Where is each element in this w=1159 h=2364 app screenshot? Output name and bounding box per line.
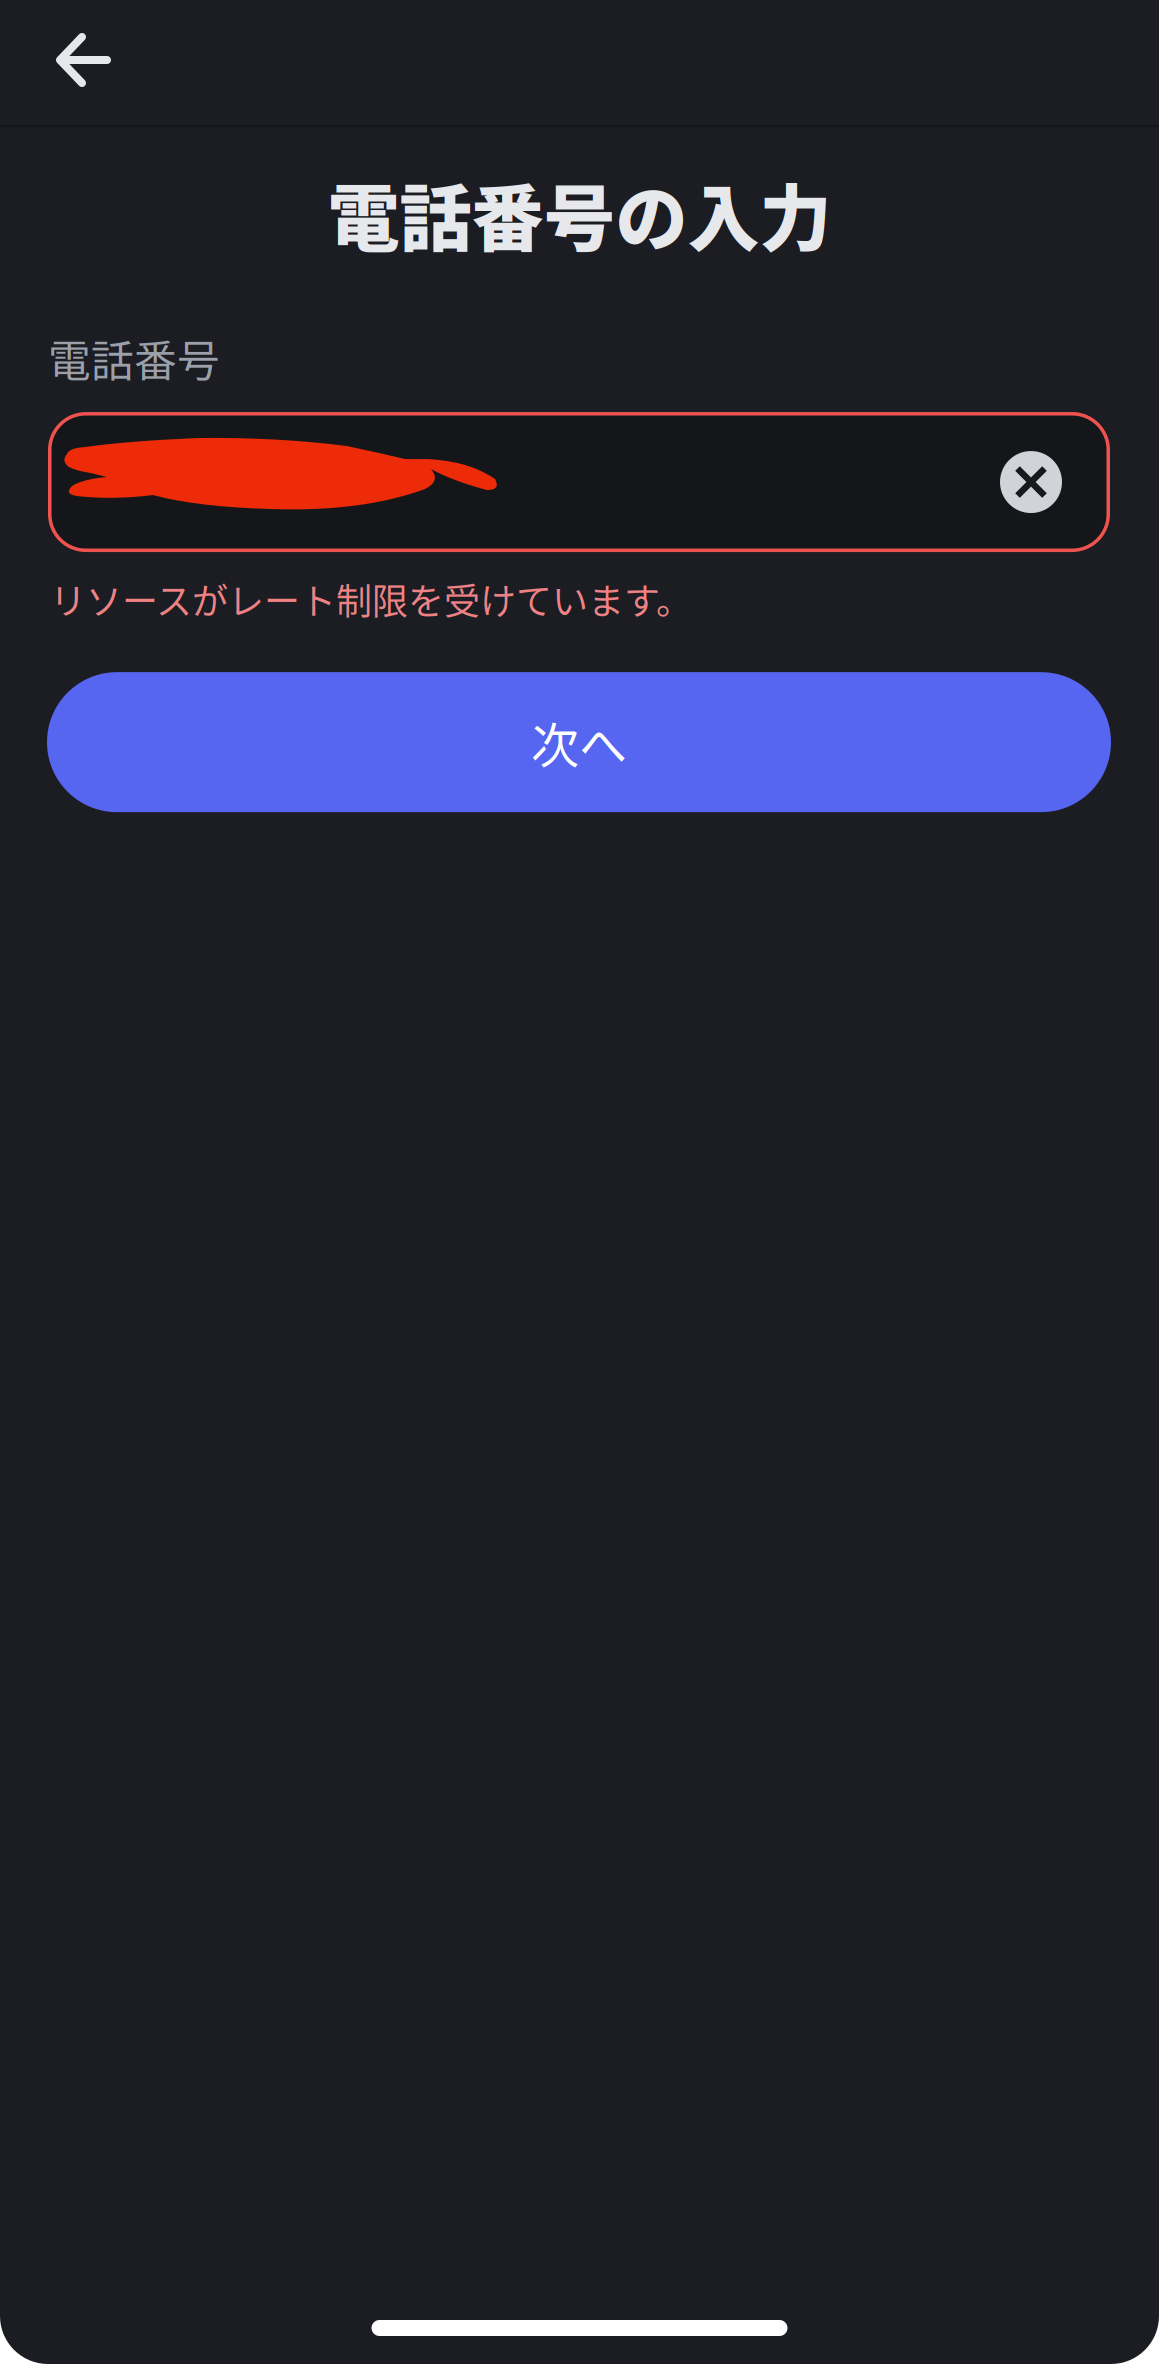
staticText: 次へ — [531, 707, 627, 777]
staticText: リソースがレート制限を受けています。 — [50, 573, 692, 625]
staticText: 電話番号 — [48, 327, 220, 389]
staticText: 電話番号の入力 — [327, 161, 831, 265]
button[interactable]: 次へ — [47, 672, 1111, 812]
button[interactable]: Back — [0, 0, 166, 125]
button[interactable]: Clear text — [1000, 451, 1062, 513]
